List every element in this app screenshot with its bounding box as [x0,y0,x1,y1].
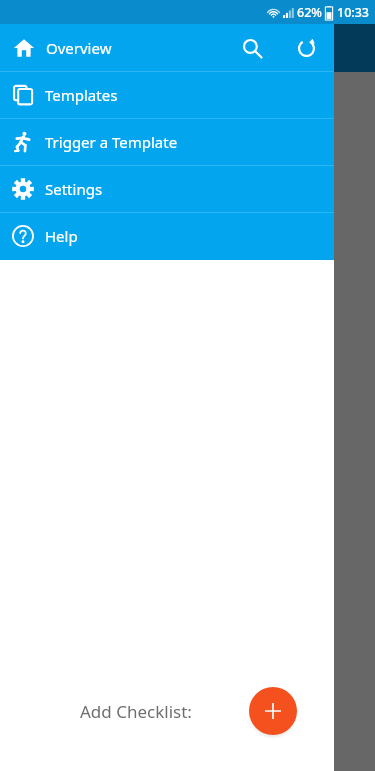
staticText: Overview [46,38,112,58]
staticText: 10:33 [337,4,370,21]
staticText: Settings [45,179,103,199]
button[interactable]: Search [230,26,274,70]
staticText: Templates [45,85,118,105]
staticText: Trigger a Template [45,132,178,152]
staticText: 62% [297,4,322,21]
button[interactable]: Settings [0,166,334,212]
button[interactable]: Help [0,213,334,259]
button[interactable]: Add Checklist [249,687,297,735]
button[interactable]: Overview [0,24,334,71]
staticText: Help [45,226,78,246]
button[interactable]: Trigger a Template [0,119,334,165]
staticText: Add Checklist: [80,700,192,723]
button[interactable]: Refresh [284,26,328,70]
button[interactable]: Templates [0,72,334,118]
